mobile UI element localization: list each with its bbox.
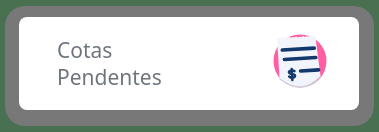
button[interactable]: Cotas Pendentes bbox=[19, 17, 359, 110]
staticText: Cotas Pendentes bbox=[57, 36, 162, 91]
